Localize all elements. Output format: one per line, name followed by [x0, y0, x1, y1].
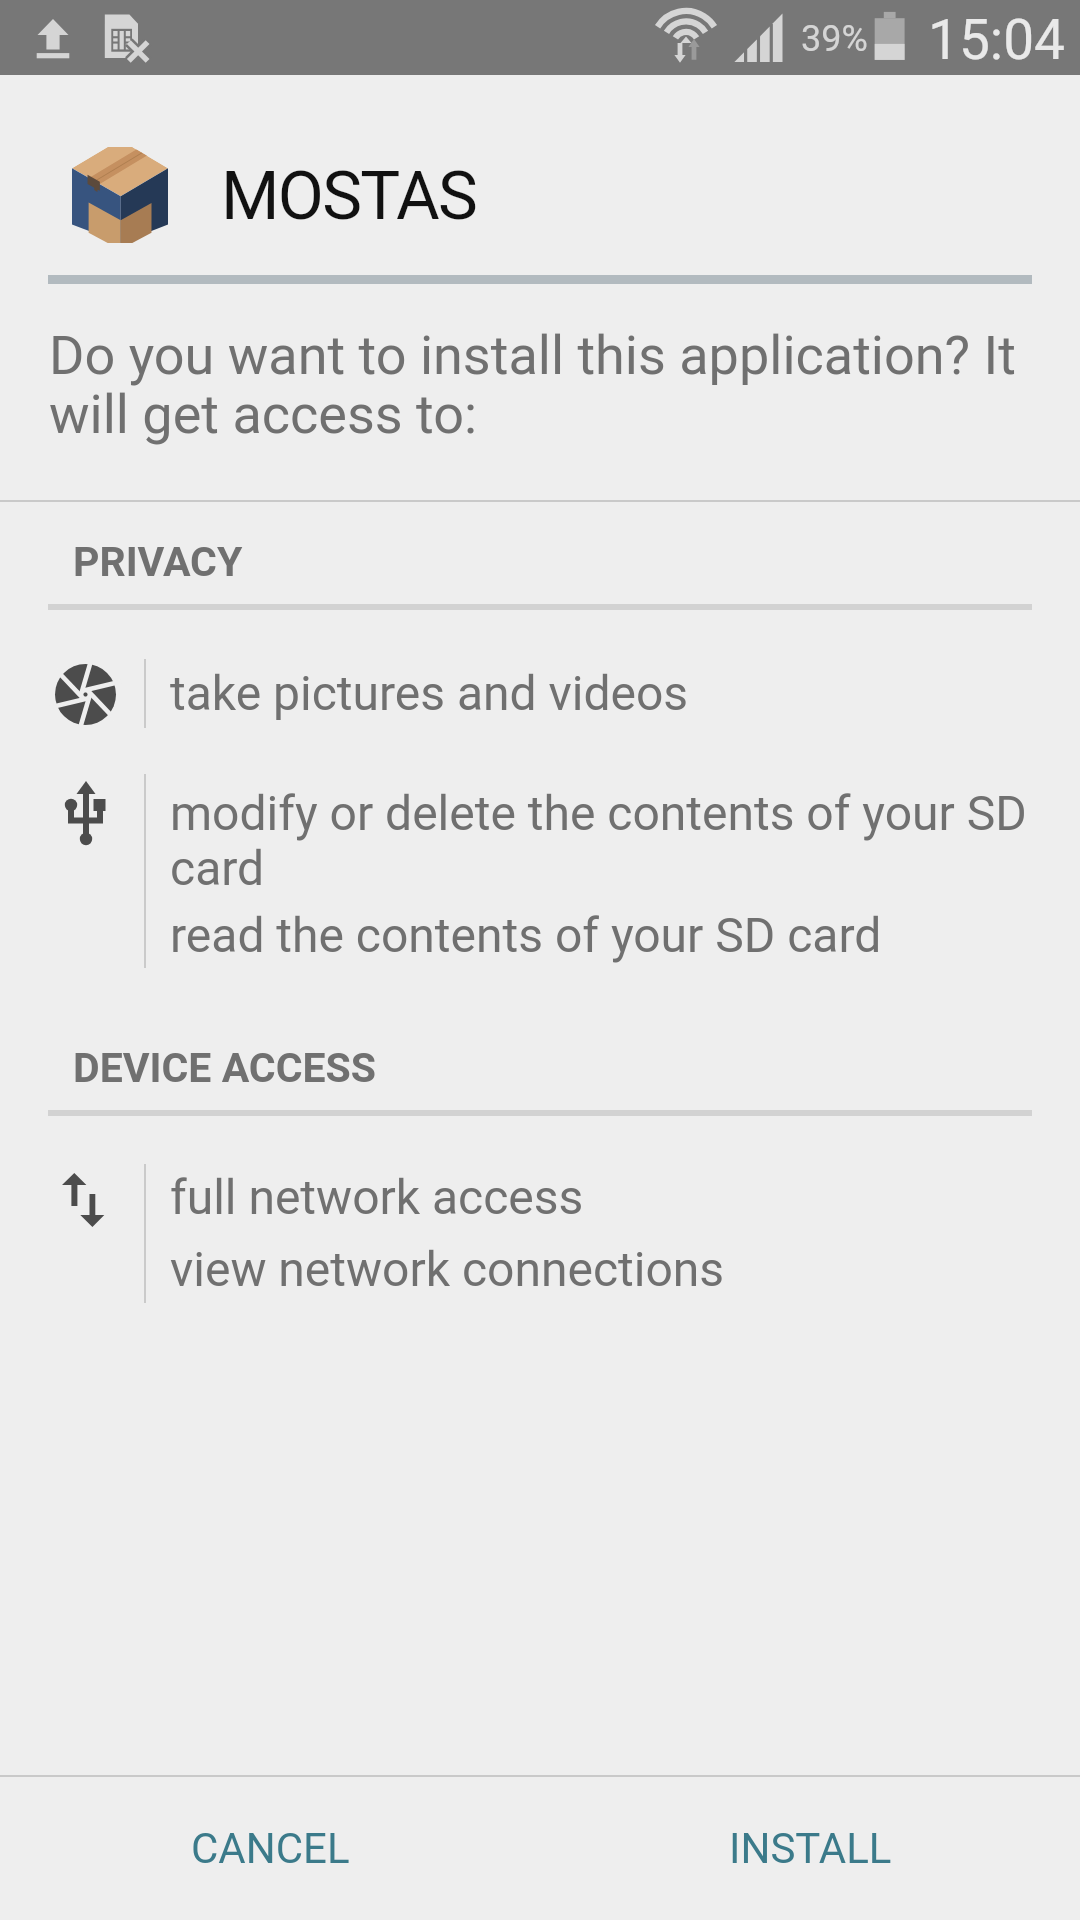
button[interactable]: modify or delete the contents of your SD… — [0, 768, 1080, 973]
staticText: Do you want to install this application?… — [49, 324, 1016, 387]
staticText: 15:04 — [928, 8, 1065, 72]
staticText: will get access to: — [49, 383, 478, 446]
staticText: DEVICE ACCESS — [73, 1044, 376, 1092]
button[interactable]: CANCEL — [0, 1777, 540, 1920]
staticText: take pictures and videos — [170, 665, 689, 721]
staticText: CANCEL — [191, 1824, 350, 1873]
staticText: modify or delete the contents of your SD — [170, 785, 1027, 841]
staticText: read the contents of your SD card — [170, 907, 882, 963]
staticText: card — [170, 840, 265, 896]
button[interactable]: take pictures and videos — [0, 650, 1080, 768]
button[interactable]: full network access, view network connec… — [0, 1158, 1080, 1308]
button[interactable]: INSTALL — [540, 1777, 1080, 1920]
staticText: full network access — [170, 1169, 584, 1225]
staticText: PRIVACY — [73, 538, 243, 586]
staticText: MOSTAS — [221, 157, 477, 236]
staticText: 39% — [801, 18, 868, 60]
staticText: INSTALL — [729, 1824, 892, 1873]
staticText: view network connections — [170, 1241, 725, 1297]
